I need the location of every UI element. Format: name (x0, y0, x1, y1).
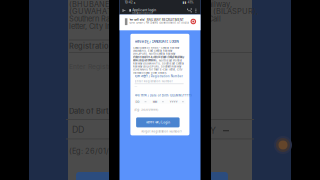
staticText: DD (136, 100, 140, 103)
staticText: रेल भर्ती बोर्ड RAILWAY RECRUITMENT (130, 18, 184, 22)
staticText: भारत सरकार / रेल मंत्रालय Government of … (129, 21, 188, 24)
staticText: Candidates of RRBs - Central Railway (MU… (133, 46, 182, 61)
staticText: rrbapply.gov.in (132, 11, 153, 15)
staticText: Date of Birth (69, 106, 113, 115)
button[interactable]: Share (0, 0, 320, 180)
staticText: 10:42 ▴ (125, 0, 136, 4)
staticText: आवेदक हेतु / CANDIDATE LOGIN (135, 39, 179, 44)
button[interactable]: More options (0, 0, 320, 180)
staticText: Enter Registration Number (135, 80, 173, 83)
staticText: Applicant login (132, 8, 156, 12)
staticText: लॉगिन करें / Login (146, 120, 170, 124)
staticText: (Eg: 26/01/1999) (134, 108, 158, 111)
button[interactable]: लॉगिन करें / Login (0, 0, 320, 180)
staticText: (GUWAHATI), South East Central Railway (… (69, 7, 258, 16)
button[interactable]: Year (0, 0, 320, 180)
staticText: Registration Number (69, 41, 144, 50)
staticText: Y (210, 125, 216, 136)
staticText: जन्म तिथि / Date of Birth (DD/MM/YYYY) (135, 93, 192, 97)
button[interactable]: Forgot Registration Number? (0, 0, 320, 180)
staticText: Forgot Registration Number? (141, 130, 181, 133)
staticText: Enter Registration Number (69, 62, 155, 71)
staticText: DD (72, 124, 84, 135)
staticText: Southern Railway (CHENNAI) for their E-C… (69, 14, 221, 23)
staticText: (BHUBANESWAR), North East Frontier Railw… (69, 0, 232, 9)
staticText: ▮▮ 41% (183, 0, 194, 4)
button[interactable]: Back (0, 0, 320, 180)
staticText: YYYY (170, 100, 178, 103)
staticText: letter, City Intimation and other detail… (69, 22, 199, 31)
staticText: Candidates of RRBs - East Coast Railway … (133, 56, 184, 74)
staticText: यूज़र आईडी / Registration Number (135, 74, 183, 78)
button[interactable]: Day (0, 0, 320, 180)
staticText: (Eg: 26/01/1999) (69, 146, 130, 155)
button[interactable]: Month (0, 0, 320, 180)
staticText: MM (153, 100, 157, 103)
